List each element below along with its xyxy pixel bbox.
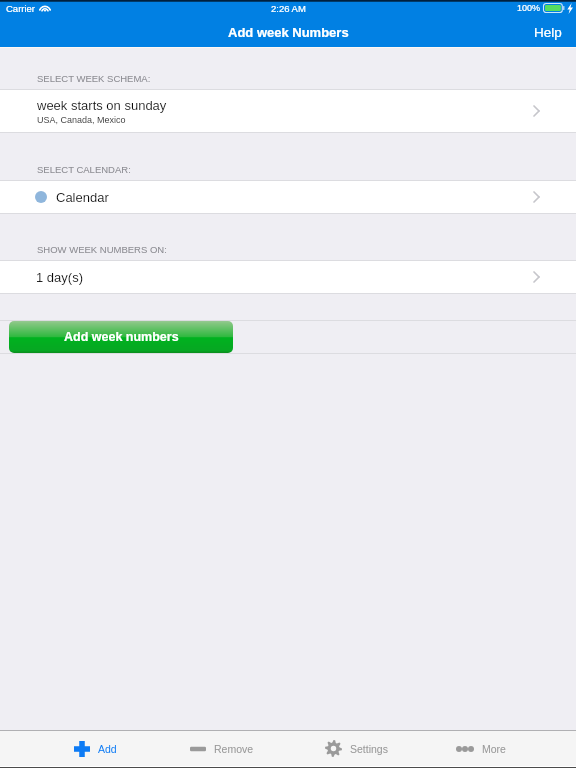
button[interactable]: 1 day(s) [0,261,576,293]
staticText: SELECT WEEK SCHEMA: [37,73,151,84]
staticText: Add week Numbers [228,25,349,40]
staticText: 100% [517,3,541,13]
staticText: Remove [214,743,254,755]
button[interactable]: week starts on sunday [0,90,576,132]
staticText: SELECT CALENDAR: [37,164,131,175]
button[interactable]: Help [520,18,576,47]
button[interactable]: Add week numbers [9,321,233,353]
staticText: SHOW WEEK NUMBERS ON: [37,244,167,255]
staticText: Settings [350,743,388,755]
staticText: week starts on sunday [37,98,167,113]
button[interactable]: Add [30,731,160,766]
button[interactable]: Settings [291,731,421,766]
staticText: Help [534,25,562,40]
staticText: USA, Canada, Mexico [37,115,126,125]
staticText: Calendar [56,190,533,205]
button[interactable]: Remove [157,731,287,766]
staticText: Carrier [6,3,36,14]
button[interactable]: More [416,731,546,766]
staticText: 2:26 AM [271,3,306,14]
staticText: More [482,743,506,755]
staticText: 1 day(s) [36,270,533,285]
staticText: Add [98,743,117,755]
button[interactable]: Calendar [0,181,576,213]
staticText: Add week numbers [64,330,179,344]
